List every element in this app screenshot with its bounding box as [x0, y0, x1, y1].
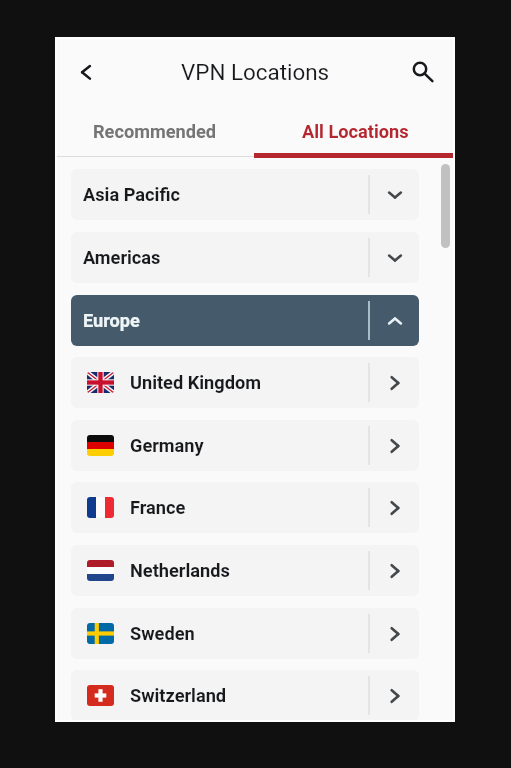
button[interactable]: United Kingdom — [71, 357, 419, 408]
button[interactable]: Netherlands — [71, 545, 419, 596]
staticText: Recommended — [93, 121, 217, 142]
button[interactable]: Sweden — [71, 608, 419, 659]
staticText: Europe — [83, 310, 368, 331]
button[interactable]: Back — [64, 50, 108, 94]
button[interactable]: Switzerland — [71, 670, 419, 721]
button[interactable]: Search — [398, 47, 442, 91]
staticText: Asia Pacific — [83, 184, 368, 205]
staticText: Americas — [83, 247, 368, 268]
button[interactable]: Germany — [71, 420, 419, 471]
staticText: Switzerland — [130, 685, 368, 706]
button[interactable]: Europe — [71, 295, 419, 346]
staticText: France — [130, 497, 368, 518]
staticText: Germany — [130, 435, 368, 456]
button[interactable]: Asia Pacific — [71, 169, 419, 220]
staticText: Netherlands — [130, 560, 368, 581]
staticText: Sweden — [130, 623, 368, 644]
button[interactable]: Americas — [71, 232, 419, 283]
button[interactable]: All Locations — [255, 107, 455, 158]
staticText: United Kingdom — [130, 372, 368, 393]
staticText: VPN Locations — [181, 59, 330, 85]
staticText: All Locations — [302, 121, 409, 142]
button[interactable]: Recommended — [55, 107, 255, 158]
button[interactable]: France — [71, 482, 419, 533]
